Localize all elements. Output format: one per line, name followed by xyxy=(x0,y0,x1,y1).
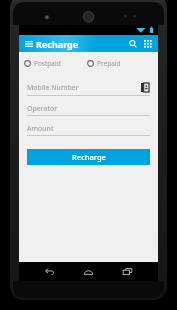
button[interactable]: Mobile Number xyxy=(27,79,150,96)
button[interactable]: Recharge xyxy=(27,149,150,165)
button[interactable]: Apps xyxy=(140,35,155,52)
staticText: Amount xyxy=(27,124,54,134)
button[interactable]: Pick contact xyxy=(139,82,150,93)
staticText: Operator xyxy=(27,104,58,114)
staticText: Postpaid xyxy=(34,59,61,68)
button[interactable]: Operator xyxy=(27,102,150,116)
button[interactable]: Back xyxy=(39,262,59,281)
staticText: Recharge xyxy=(36,38,79,50)
button[interactable]: Amount xyxy=(27,122,150,136)
button[interactable]: Open navigation drawer xyxy=(22,35,35,52)
button[interactable]: Recent apps xyxy=(117,262,137,281)
button[interactable]: Search xyxy=(125,35,140,52)
button[interactable]: Postpaid xyxy=(24,56,87,70)
button[interactable]: Prepaid xyxy=(87,56,150,70)
staticText: Prepaid xyxy=(97,59,121,68)
staticText: Recharge xyxy=(72,152,106,162)
button[interactable]: Home xyxy=(78,262,98,281)
staticText: Mobile Number xyxy=(27,83,79,93)
